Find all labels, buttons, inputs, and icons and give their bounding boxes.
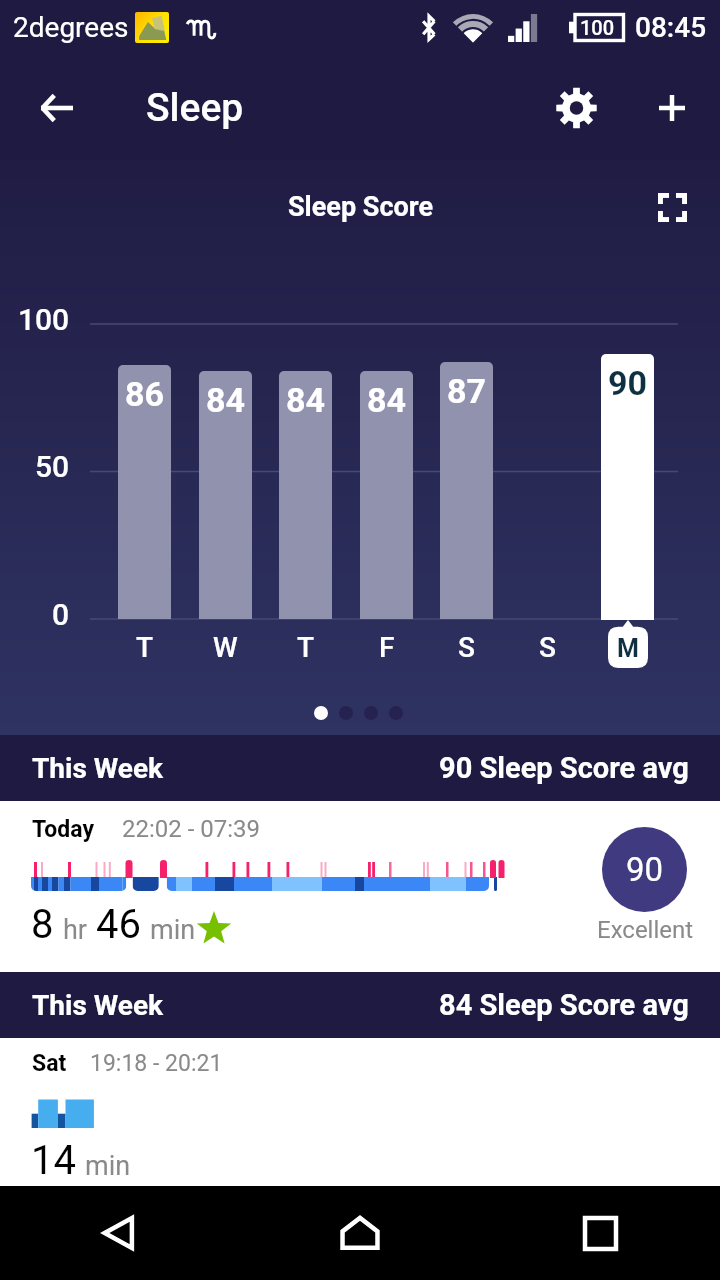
staticText: 86 — [125, 374, 165, 414]
staticText: hr — [63, 914, 88, 946]
staticText: 46 — [96, 901, 141, 948]
staticText: min — [150, 914, 196, 946]
staticText: 90 — [626, 850, 664, 889]
button[interactable]: Sat — [0, 1038, 720, 1186]
staticText: 0 — [52, 597, 70, 632]
staticText: 19:18 - 20:21 — [90, 1050, 223, 1077]
staticText: T — [136, 631, 154, 664]
button[interactable]: Back — [0, 55, 113, 160]
staticText: 50 — [35, 449, 70, 484]
button[interactable]: Home — [240, 1186, 480, 1280]
staticText: Sat — [32, 1050, 67, 1077]
staticText: Sleep Score — [288, 191, 433, 223]
staticText: 08:45 — [635, 11, 707, 44]
button[interactable]: Fullscreen — [642, 177, 702, 237]
staticText: 84 — [367, 380, 407, 420]
staticText: 84 Sleep Score avg — [439, 988, 689, 1022]
button[interactable]: Add — [624, 55, 720, 160]
staticText: 84 — [286, 380, 326, 420]
staticText: M — [617, 634, 639, 663]
staticText: 90 — [608, 363, 648, 403]
staticText: min — [85, 1150, 131, 1182]
staticText: 2degrees — [13, 11, 129, 44]
staticText: 100 — [18, 302, 70, 337]
staticText: T — [297, 631, 315, 664]
staticText: 100 — [580, 16, 615, 39]
staticText: F — [379, 631, 395, 664]
staticText: 8 — [31, 901, 54, 948]
staticText: 22:02 - 07:39 — [122, 815, 261, 843]
button[interactable]: Recent apps — [480, 1186, 720, 1280]
staticText: 87 — [447, 371, 487, 411]
button[interactable]: This Week — [0, 735, 720, 801]
staticText: 14 — [31, 1137, 76, 1184]
staticText: 90 Sleep Score avg — [439, 751, 689, 785]
staticText: 84 — [206, 380, 246, 420]
button[interactable]: Settings — [528, 55, 624, 160]
staticText: S — [458, 631, 475, 664]
staticText: Sleep — [146, 85, 244, 131]
staticText: S — [539, 631, 556, 664]
staticText: This Week — [32, 989, 164, 1022]
button[interactable]: Today — [0, 801, 720, 972]
staticText: Excellent — [597, 916, 694, 944]
staticText: Today — [32, 816, 94, 843]
staticText: W — [213, 631, 238, 664]
button[interactable]: Back — [0, 1186, 240, 1280]
staticText: This Week — [32, 752, 164, 785]
button[interactable]: This Week — [0, 972, 720, 1038]
